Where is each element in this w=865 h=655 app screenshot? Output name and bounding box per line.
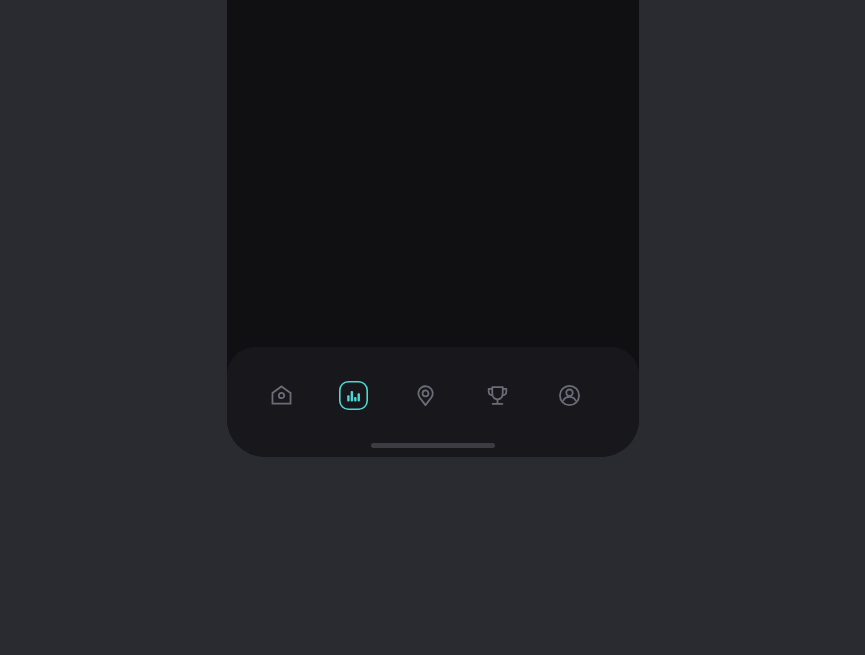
button[interactable]: Places xyxy=(397,367,453,423)
button[interactable]: Achievements xyxy=(469,367,525,423)
button[interactable]: Statistics xyxy=(325,367,381,423)
button[interactable]: Home xyxy=(253,367,309,423)
button[interactable]: Profile xyxy=(541,367,597,423)
